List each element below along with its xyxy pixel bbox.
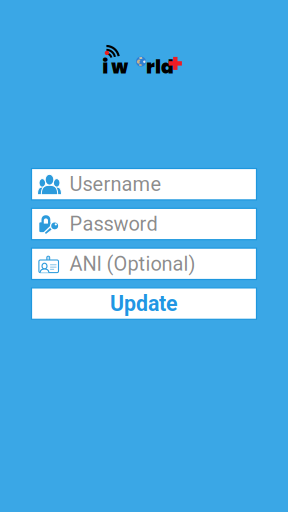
staticText: Password: [69, 212, 157, 236]
button[interactable]: Password: [31, 208, 256, 240]
staticText: i w: [102, 54, 128, 80]
button[interactable]: Username: [31, 168, 256, 200]
staticText: Username: [69, 172, 161, 196]
staticText: ANI (Optional): [69, 252, 195, 275]
button[interactable]: ANI (Optional): [31, 248, 256, 279]
staticText: Update: [110, 291, 178, 316]
button[interactable]: Update: [31, 288, 256, 319]
staticText: rld: [146, 54, 174, 80]
